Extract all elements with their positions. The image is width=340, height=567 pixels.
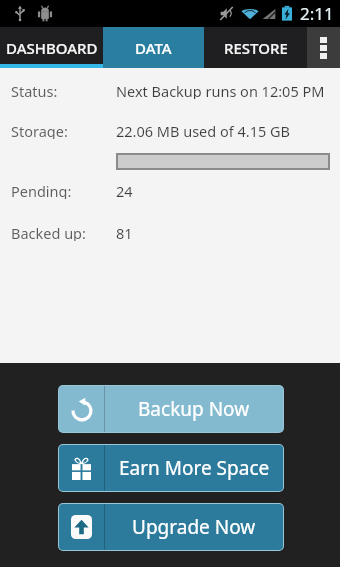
staticText: Pending: xyxy=(11,181,72,199)
button[interactable]: Backup Now xyxy=(59,386,283,432)
staticText: Status: xyxy=(11,81,58,99)
staticText: Next Backup runs on 12:05 PM xyxy=(116,81,325,99)
button[interactable]: RESTORE xyxy=(204,27,307,68)
staticText: Upgrade Now xyxy=(132,514,256,540)
button[interactable]: DATA xyxy=(103,27,204,68)
staticText: Backed up: xyxy=(11,223,86,241)
staticText: Backup Now xyxy=(138,396,250,422)
staticText: 22.06 MB used of 4.15 GB xyxy=(116,121,290,139)
staticText: 81 xyxy=(116,223,133,241)
staticText: 2:11 xyxy=(300,2,334,25)
staticText: Storage: xyxy=(11,121,68,139)
staticText: 24 xyxy=(116,181,133,199)
staticText: DATA xyxy=(135,38,172,58)
button[interactable]: Earn More Space xyxy=(59,445,283,491)
button[interactable]: DASHBOARD xyxy=(0,27,103,68)
button[interactable]: More options xyxy=(307,27,340,68)
staticText: Earn More Space xyxy=(119,455,270,481)
button[interactable]: Upgrade Now xyxy=(59,504,283,550)
staticText: RESTORE xyxy=(224,38,288,58)
staticText: DASHBOARD xyxy=(6,38,98,58)
